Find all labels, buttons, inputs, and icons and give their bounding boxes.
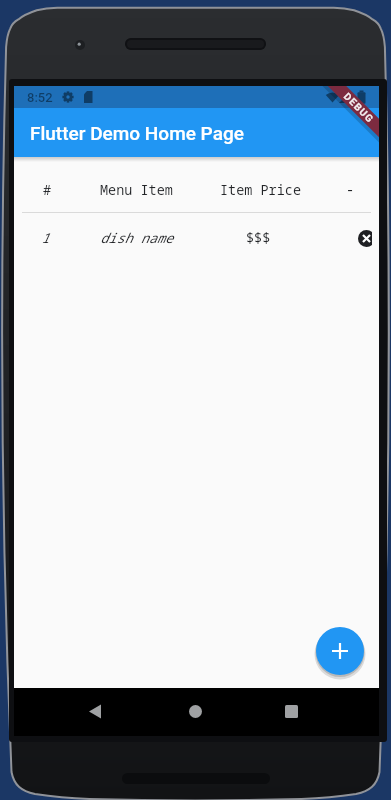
staticText: 1 — [41, 229, 50, 247]
button[interactable] — [176, 692, 214, 732]
staticText: - — [346, 181, 355, 199]
button[interactable] — [358, 230, 372, 247]
staticText: Menu Item — [100, 181, 173, 199]
staticText: dish name — [100, 229, 173, 247]
staticText: Item Price — [220, 181, 301, 199]
button[interactable] — [316, 627, 364, 675]
staticText: 8:52 — [27, 90, 53, 105]
staticText: Flutter Demo Home Page — [30, 122, 244, 144]
staticText: DEBUG — [341, 90, 376, 126]
staticText: # — [43, 181, 52, 199]
button[interactable] — [272, 692, 310, 732]
button[interactable] — [76, 692, 114, 732]
staticText: $$$ — [246, 229, 271, 247]
